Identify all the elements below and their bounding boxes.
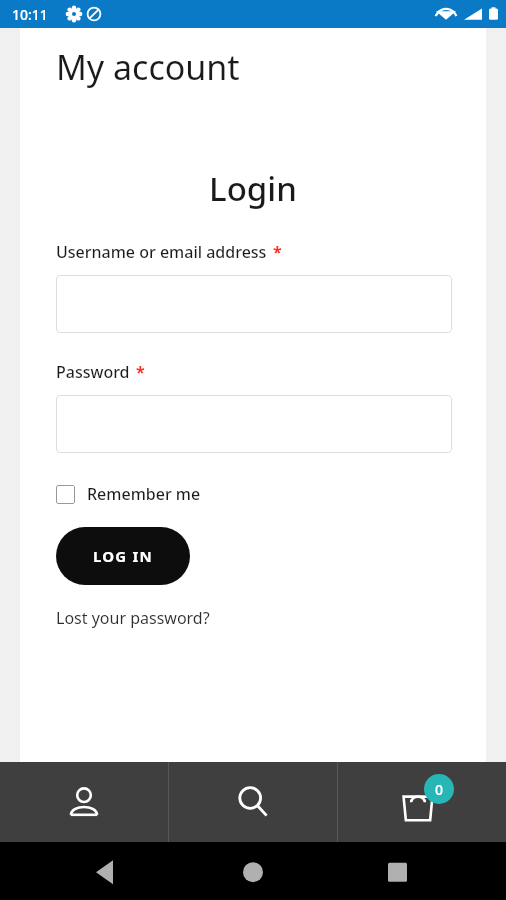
button[interactable]: Cart, 0 items [338,762,506,842]
button[interactable]: Lost your password? [56,607,210,629]
staticText: * [273,241,282,263]
staticText: Login [20,166,486,211]
staticText: LOG IN [93,546,153,566]
button[interactable]: Account [0,762,168,842]
button[interactable] [56,275,452,333]
button[interactable] [56,395,452,453]
staticText: Password [56,361,130,383]
staticText: 0 [435,780,444,799]
staticText: 10:11 [12,5,48,24]
staticText: My account [56,44,240,90]
staticText: Username or email address [56,241,267,263]
staticText: Remember me [87,483,201,505]
staticText: * [136,361,145,383]
button[interactable]: LOG IN [56,527,190,585]
button[interactable]: Search [169,762,337,842]
button[interactable]: Remember me [56,483,201,505]
